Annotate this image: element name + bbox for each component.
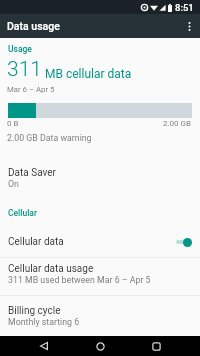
- button[interactable]: Recent apps: [142, 336, 170, 356]
- button[interactable]: Data Saver: [0, 157, 200, 192]
- staticText: 311 MB used between Mar 6 – Apr 5: [8, 275, 151, 285]
- staticText: Cellular: [8, 208, 37, 218]
- button[interactable]: [0, 38, 200, 148]
- staticText: Data usage: [7, 20, 60, 32]
- staticText: 0 B: [7, 119, 19, 128]
- staticText: 2.00 GB: [163, 119, 192, 128]
- staticText: 311: [7, 57, 42, 82]
- staticText: On: [8, 179, 19, 189]
- button[interactable]: Back: [30, 336, 58, 356]
- button[interactable]: Billing cycle: [0, 296, 200, 336]
- staticText: Usage: [8, 44, 32, 54]
- button[interactable]: More options: [178, 14, 200, 38]
- staticText: Cellular data: [8, 236, 64, 248]
- button[interactable]: Cellular data: [0, 226, 200, 257]
- staticText: Cellular data usage: [8, 263, 94, 275]
- staticText: Monthly starting 6: [8, 317, 80, 327]
- button[interactable]: Cellular data usage: [0, 258, 200, 295]
- button[interactable]: Home: [86, 336, 114, 356]
- staticText: Data Saver: [8, 167, 56, 179]
- staticText: Mar 6 – Apr 5: [7, 85, 55, 94]
- staticText: MB cellular data: [45, 67, 132, 81]
- staticText: 2.00 GB Data warning: [7, 133, 92, 143]
- staticText: 8:51: [175, 2, 194, 13]
- staticText: Billing cycle: [8, 305, 61, 317]
